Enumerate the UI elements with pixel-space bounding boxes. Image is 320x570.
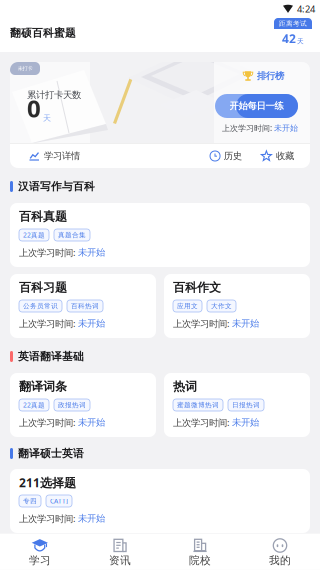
button[interactable]: 资讯 <box>80 538 160 565</box>
staticText: 学习详情 <box>44 150 80 162</box>
staticText: 上次学习时间: <box>19 512 78 525</box>
button[interactable]: 院校 <box>160 538 240 565</box>
staticText: 日报热词 <box>232 401 260 409</box>
button[interactable]: 百科作文 <box>164 274 310 338</box>
staticText: 未开始 <box>274 123 298 133</box>
button[interactable]: 距离考试 <box>274 18 312 48</box>
button[interactable]: 学习 <box>0 538 80 565</box>
staticText: 211选择题 <box>19 474 76 490</box>
staticText: 百科作文 <box>173 280 221 295</box>
staticText: 未开始 <box>78 318 105 329</box>
staticText: 上次学习时间: <box>19 416 78 429</box>
staticText: 我的 <box>269 554 291 567</box>
staticText: 开始每日一练 <box>229 100 283 112</box>
staticText: 公务员常识 <box>23 302 58 310</box>
staticText: 政报热词 <box>58 401 86 409</box>
staticText: 专四 <box>23 497 37 505</box>
button[interactable]: 收藏 <box>261 149 294 162</box>
staticText: 距离考试 <box>279 19 307 28</box>
staticText: 天 <box>43 113 51 123</box>
staticText: 上次学习时间: <box>173 416 232 429</box>
staticText: 资讯 <box>109 554 131 567</box>
staticText: 天 <box>297 37 304 45</box>
staticText: 上次学习时间: <box>19 246 78 259</box>
staticText: 未开始 <box>78 513 105 524</box>
staticText: 未开始 <box>232 417 259 428</box>
button[interactable]: 排行榜 <box>242 70 284 82</box>
staticText: 学习 <box>29 554 51 567</box>
staticText: 蜜题微博热词 <box>177 401 219 409</box>
staticText: 未开始 <box>78 417 105 428</box>
staticText: 累计打卡天数 <box>27 89 81 101</box>
staticText: 未开始 <box>78 247 105 258</box>
staticText: 翻译词条 <box>19 379 67 394</box>
staticText: 大作文 <box>211 302 232 310</box>
button[interactable]: 历史 <box>210 149 242 162</box>
staticText: 百科真题 <box>19 209 67 224</box>
staticText: 未打卡 <box>17 65 32 72</box>
staticText: 排行榜 <box>257 70 284 82</box>
staticText: 真题合集 <box>58 231 86 239</box>
staticText: 42 <box>282 30 296 46</box>
button[interactable]: 百科真题 <box>10 203 310 267</box>
staticText: 4:24 <box>297 3 315 15</box>
staticText: 未开始 <box>232 318 259 329</box>
button[interactable]: 我的 <box>240 538 320 565</box>
staticText: 应用文 <box>177 302 198 310</box>
staticText: 历史 <box>224 150 242 162</box>
staticText: 收藏 <box>276 150 294 162</box>
staticText: 翻硕百科蜜题 <box>10 26 76 39</box>
staticText: 上次学习时间: <box>222 123 274 133</box>
button[interactable]: 翻译词条 <box>10 373 156 437</box>
staticText: 百科热词 <box>71 302 99 310</box>
button[interactable]: 开始每日一练 <box>215 94 298 118</box>
staticText: 英语翻译基础 <box>18 350 84 363</box>
staticText: 百科习题 <box>19 280 67 295</box>
staticText: 翻译硕士英语 <box>18 447 84 460</box>
button[interactable]: 百科习题 <box>10 274 156 338</box>
staticText: 上次学习时间: <box>173 317 232 330</box>
staticText: 22真题 <box>23 231 45 239</box>
button[interactable]: 211选择题 <box>10 469 310 533</box>
staticText: 汉语写作与百科 <box>18 180 95 193</box>
staticText: 22真题 <box>23 401 45 409</box>
staticText: CATTI <box>50 497 68 505</box>
staticText: 热词 <box>173 379 197 394</box>
button[interactable]: 热词 <box>164 373 310 437</box>
staticText: 上次学习时间: <box>19 317 78 330</box>
button[interactable]: 学习详情 <box>29 149 80 162</box>
staticText: 院校 <box>189 554 211 567</box>
staticText: 0 <box>27 92 41 124</box>
